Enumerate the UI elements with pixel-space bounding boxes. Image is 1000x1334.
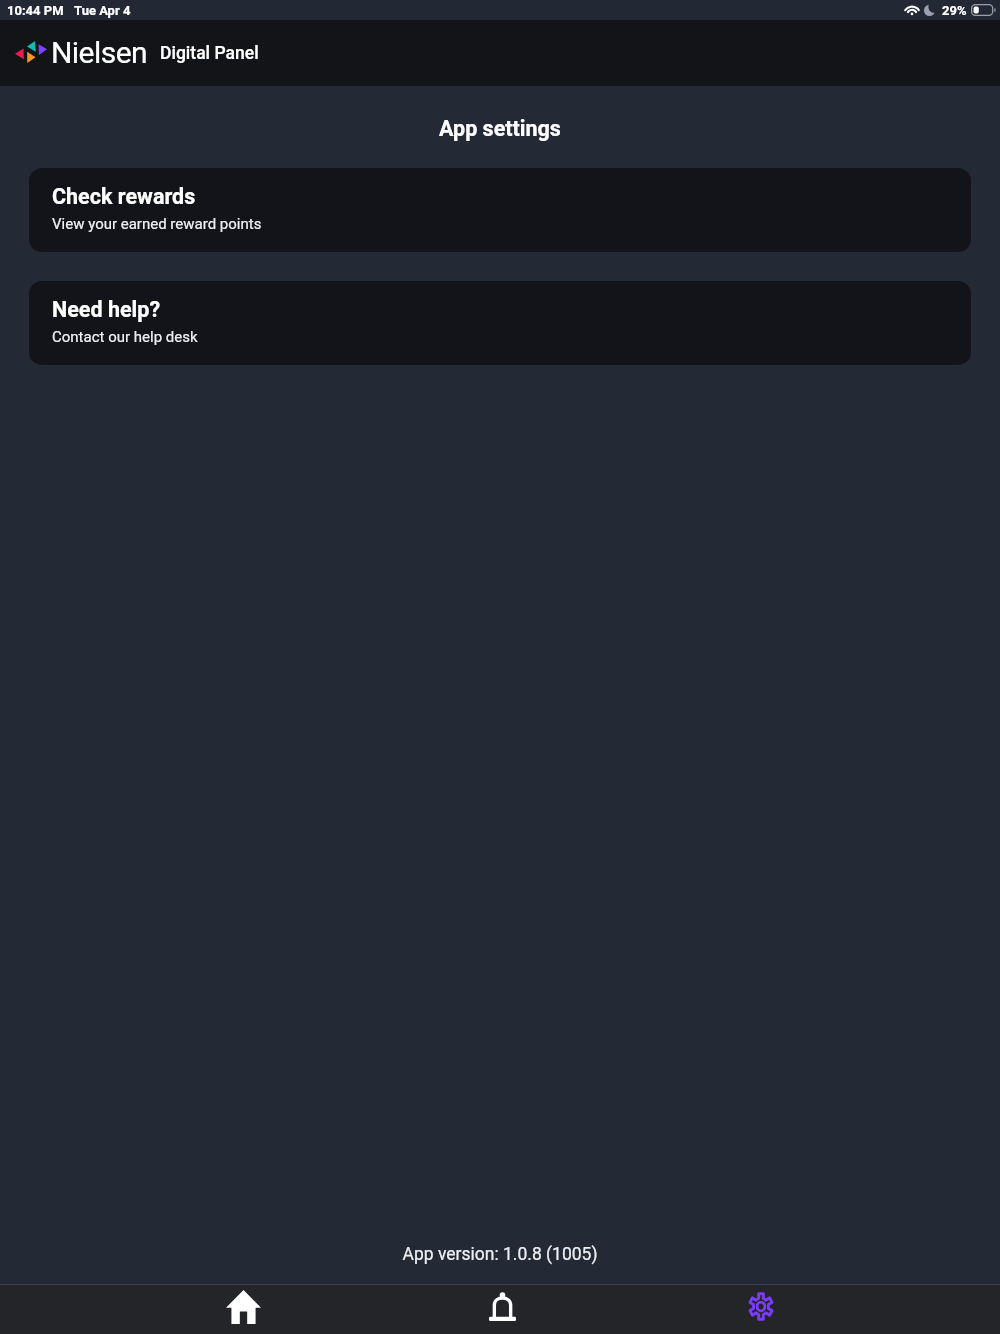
- staticText: Tue Apr 4: [74, 3, 131, 18]
- button[interactable]: Home: [213, 1285, 273, 1334]
- staticText: View your earned reward points: [52, 215, 262, 233]
- staticText: Nielsen: [51, 35, 148, 70]
- staticText: 29%: [942, 3, 967, 18]
- staticText: Need help?: [52, 297, 161, 322]
- button[interactable]: Need help?: [29, 281, 971, 365]
- staticText: App settings: [0, 116, 1000, 141]
- staticText: App version: 1.0.8 (1005): [0, 1244, 1000, 1265]
- staticText: Check rewards: [52, 184, 196, 209]
- button[interactable]: Check rewards: [29, 168, 971, 252]
- button[interactable]: Settings: [731, 1285, 791, 1334]
- button[interactable]: Notifications: [472, 1285, 532, 1334]
- staticText: 10:44 PM: [7, 3, 64, 18]
- staticText: Digital Panel: [160, 43, 259, 64]
- staticText: Contact our help desk: [52, 328, 198, 346]
